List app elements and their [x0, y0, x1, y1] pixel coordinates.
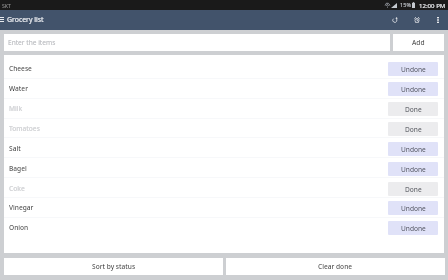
button[interactable]: Alarm — [409, 10, 425, 30]
button[interactable]: Salt — [4, 138, 444, 157]
button[interactable]: Refresh — [387, 10, 403, 30]
button[interactable]: More options — [430, 10, 446, 30]
button[interactable]: Undone — [388, 62, 438, 76]
button[interactable]: Undone — [388, 221, 438, 235]
button[interactable]: Bagel — [4, 158, 444, 177]
staticText: Enter the items — [8, 38, 56, 47]
button[interactable]: Undone — [388, 82, 438, 96]
staticText: Tomatoes — [9, 124, 399, 133]
button[interactable]: Tomatoes — [4, 118, 444, 137]
staticText: Cheese — [9, 64, 399, 73]
staticText: Water — [9, 84, 399, 93]
staticText: Grocery list — [7, 15, 44, 24]
button[interactable]: Undone — [388, 162, 438, 176]
staticText: Salt — [9, 144, 399, 153]
staticText: Undone — [401, 165, 426, 174]
staticText: Done — [405, 185, 422, 194]
button[interactable]: Onion — [4, 217, 444, 236]
button[interactable]: Done — [388, 122, 438, 136]
staticText: SKT — [2, 2, 11, 9]
staticText: Done — [405, 125, 422, 134]
button[interactable]: Clear done — [226, 258, 445, 275]
staticText: Undone — [401, 65, 426, 74]
button[interactable]: Coke — [4, 178, 444, 197]
staticText: Undone — [401, 145, 426, 154]
button[interactable]: Undone — [388, 201, 438, 215]
button[interactable]: Milk — [4, 98, 444, 117]
button[interactable]: Vinegar — [4, 197, 444, 216]
staticText: Undone — [401, 204, 426, 213]
button[interactable]: Water — [4, 78, 444, 97]
button[interactable]: Done — [388, 182, 438, 196]
staticText: Coke — [9, 184, 399, 193]
staticText: Done — [405, 105, 422, 114]
staticText: Undone — [401, 224, 426, 233]
staticText: 15% — [400, 1, 412, 9]
staticText: Undone — [401, 85, 426, 94]
staticText: Sort by status — [92, 262, 136, 271]
button[interactable]: Add — [393, 34, 444, 51]
button[interactable]: Undone — [388, 142, 438, 156]
staticText: Add — [412, 38, 425, 47]
button[interactable]: Open navigation menu — [0, 10, 8, 30]
staticText: 12:00 PM — [419, 1, 446, 9]
staticText: Vinegar — [9, 203, 399, 212]
button[interactable]: Cheese — [4, 58, 444, 77]
button[interactable]: Done — [388, 102, 438, 116]
button[interactable]: Sort by status — [4, 258, 223, 275]
staticText: Clear done — [318, 262, 353, 271]
button[interactable]: Enter the items — [4, 34, 390, 51]
staticText: Onion — [9, 223, 399, 232]
staticText: Bagel — [9, 164, 399, 173]
staticText: Milk — [9, 104, 399, 113]
